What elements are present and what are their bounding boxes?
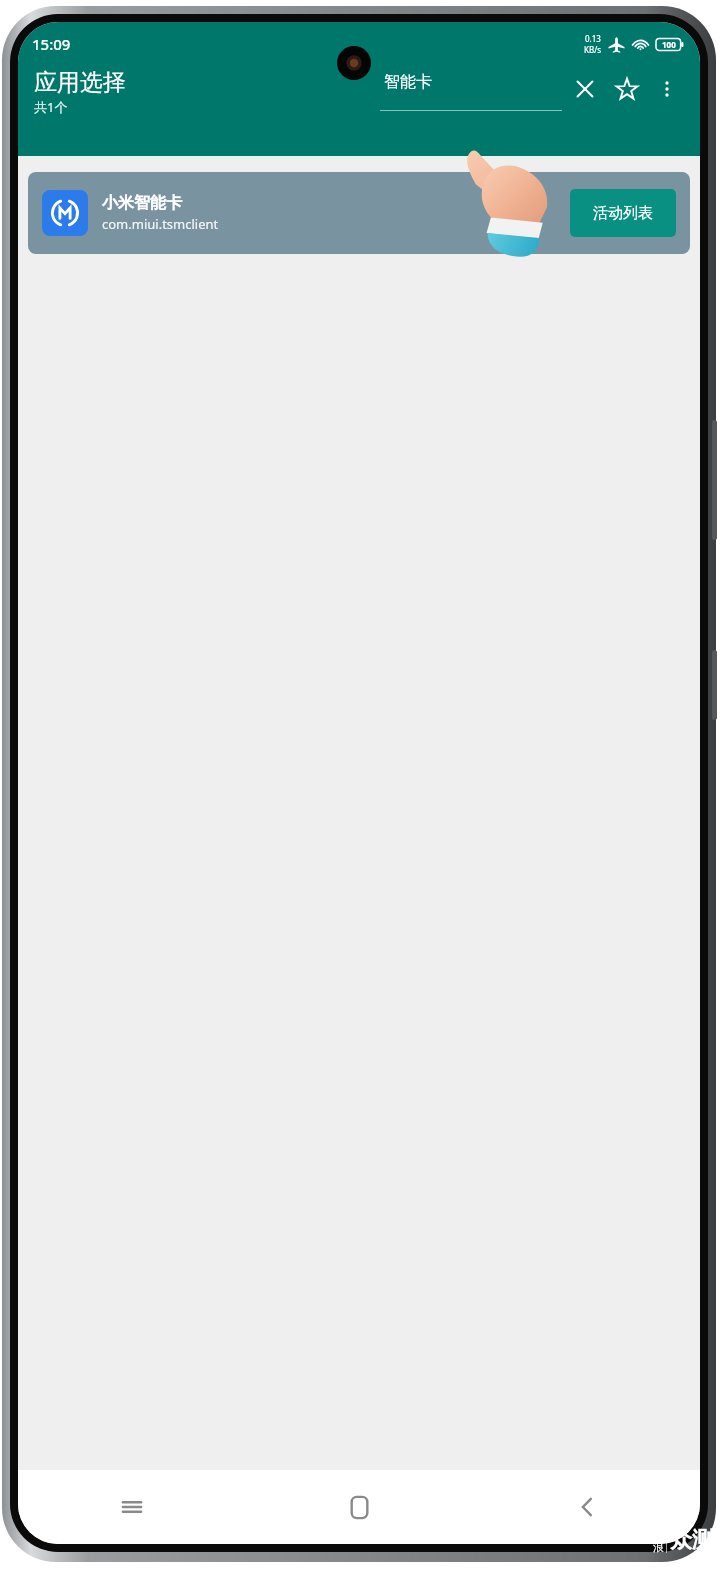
staticText: 众测 (670, 1526, 714, 1554)
button[interactable]: Back (473, 1470, 700, 1544)
button[interactable]: Favorite (608, 70, 646, 108)
staticText: 应用选择 (34, 68, 126, 97)
staticText: 小米智能卡 (102, 193, 182, 213)
button[interactable]: More options (648, 70, 686, 108)
staticText: com.miui.tsmclient (102, 215, 219, 233)
staticText: 0.13 (585, 33, 601, 44)
staticText: 15:09 (32, 34, 71, 54)
button[interactable]: Home (246, 1470, 473, 1544)
button[interactable]: 智能卡 (380, 72, 562, 111)
staticText: 智能卡 (384, 72, 432, 92)
button[interactable]: Clear (566, 70, 604, 108)
staticText: 浪 (653, 1540, 664, 1554)
staticText: 100 (662, 39, 676, 50)
button[interactable]: 活动列表 (570, 189, 676, 237)
staticText: KB/s (584, 44, 601, 55)
staticText: 活动列表 (593, 204, 653, 223)
button[interactable]: Recents (18, 1470, 246, 1544)
staticText: 共1个 (34, 98, 68, 116)
button[interactable]: 小米智能卡 (28, 172, 690, 254)
